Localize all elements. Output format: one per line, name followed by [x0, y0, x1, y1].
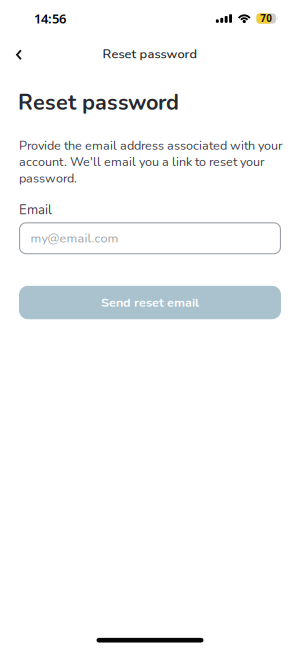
button[interactable]: Back — [0, 38, 22, 70]
staticText: 14:56 — [34, 10, 66, 27]
staticText: 70 — [260, 11, 272, 25]
staticText: Send reset email — [101, 294, 199, 311]
button[interactable]: Email — [19, 222, 281, 254]
staticText: Reset password — [18, 88, 179, 117]
button[interactable]: Send reset email — [19, 286, 281, 319]
staticText: Email — [19, 201, 52, 219]
staticText: Provide the email address associated wit… — [19, 137, 283, 186]
staticText: Reset password — [102, 45, 197, 63]
staticText: my@email.com — [30, 230, 118, 247]
